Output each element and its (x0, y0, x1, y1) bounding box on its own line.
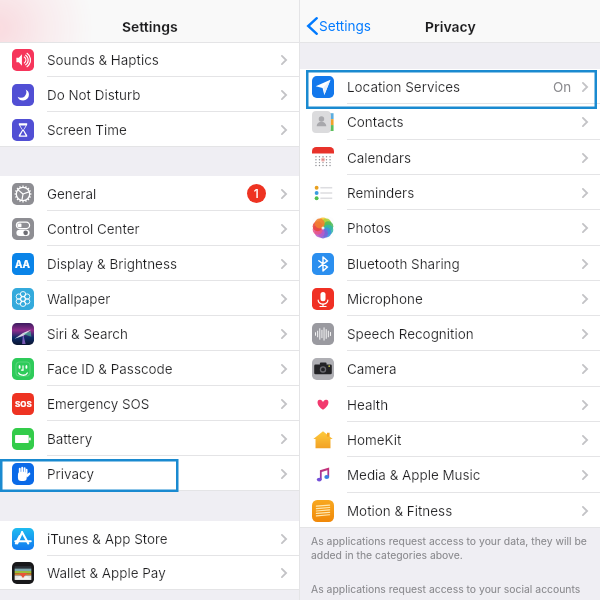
staticText: Wallpaper (47, 291, 111, 307)
staticText: Media & Apple Music (347, 467, 481, 483)
button[interactable]: Battery (0, 421, 299, 456)
staticText: Sounds & Haptics (47, 52, 159, 68)
button[interactable]: Media & Apple Music (300, 457, 600, 493)
button[interactable]: Calendars (300, 140, 600, 175)
staticText: Privacy (425, 19, 476, 36)
staticText: iTunes & App Store (47, 531, 168, 547)
button[interactable]: Sounds & Haptics (0, 43, 299, 77)
staticText: As applications request access to your s… (311, 583, 581, 596)
staticText: Screen Time (47, 122, 127, 138)
staticText: Settings (319, 18, 372, 34)
staticText: Calendars (347, 150, 412, 166)
button[interactable]: Bluetooth Sharing (300, 246, 600, 281)
staticText: Siri & Search (47, 326, 128, 342)
staticText: Face ID & Passcode (47, 361, 173, 377)
staticText: Privacy (47, 466, 94, 482)
staticText: Bluetooth Sharing (347, 256, 460, 272)
button[interactable]: Motion & Fitness (300, 493, 600, 528)
button[interactable]: Wallpaper (0, 281, 299, 316)
staticText: Do Not Disturb (47, 87, 141, 103)
staticText: Speech Recognition (347, 326, 474, 342)
button[interactable]: Face ID & Passcode (0, 351, 299, 386)
staticText: Camera (347, 361, 397, 377)
button[interactable]: Wallet & Apple Pay (0, 556, 299, 590)
staticText: Wallet & Apple Pay (47, 565, 166, 581)
button[interactable]: Screen Time (0, 112, 299, 147)
staticText: Settings (122, 19, 178, 36)
button[interactable]: Control Center (0, 211, 299, 246)
staticText: Photos (347, 220, 391, 236)
staticText: General (47, 186, 97, 202)
button[interactable]: Health (300, 387, 600, 422)
button[interactable]: Photos (300, 210, 600, 246)
staticText: Battery (47, 431, 93, 447)
staticText: SOS (15, 399, 32, 409)
button[interactable]: Contacts (300, 104, 600, 140)
button[interactable]: Camera (300, 351, 600, 387)
button[interactable]: Siri & Search (0, 316, 299, 351)
button[interactable]: AA (0, 246, 299, 281)
staticText: As applications request access to your d… (311, 535, 592, 561)
staticText: Contacts (347, 114, 404, 130)
staticText: Display & Brightness (47, 256, 178, 272)
staticText: Motion & Fitness (347, 503, 453, 519)
staticText: HomeKit (347, 432, 402, 448)
staticText: On (553, 79, 572, 95)
button[interactable]: iTunes & App Store (0, 521, 299, 556)
button[interactable]: Microphone (300, 281, 600, 316)
button[interactable]: SOS (0, 386, 299, 421)
button[interactable]: Do Not Disturb (0, 77, 299, 112)
button[interactable]: Speech Recognition (300, 316, 600, 351)
staticText: Reminders (347, 185, 415, 201)
button[interactable]: Settings (307, 17, 372, 35)
staticText: AA (15, 258, 31, 270)
staticText: Emergency SOS (47, 396, 150, 412)
staticText: Location Services (347, 79, 461, 95)
button[interactable]: Reminders (300, 175, 600, 210)
button[interactable]: Privacy (0, 456, 299, 491)
button[interactable]: General (0, 176, 299, 211)
staticText: Control Center (47, 221, 140, 237)
button[interactable]: HomeKit (300, 422, 600, 457)
staticText: 1 (254, 187, 259, 201)
button[interactable]: Location Services (300, 69, 600, 104)
staticText: Health (347, 397, 389, 413)
staticText: Microphone (347, 291, 423, 307)
